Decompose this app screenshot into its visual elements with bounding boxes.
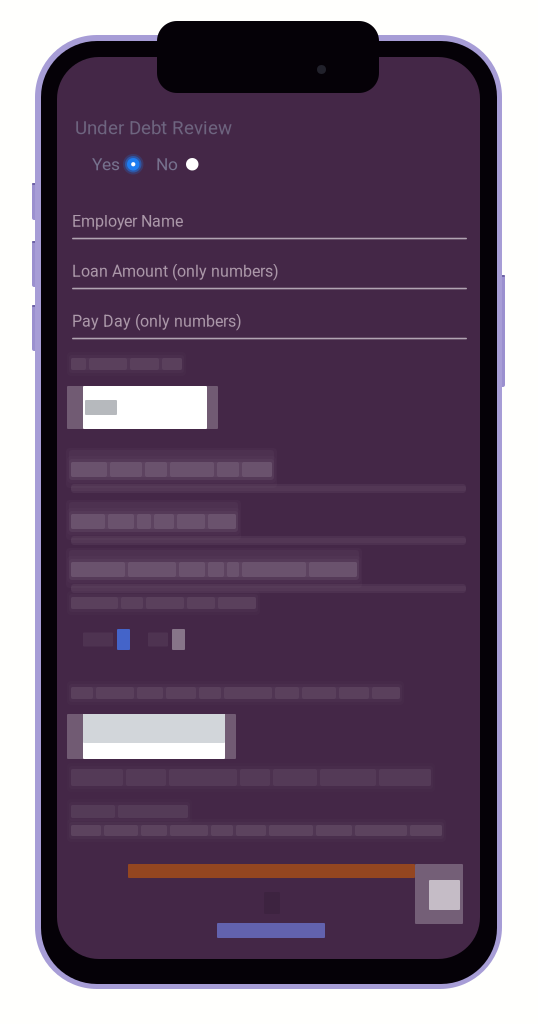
staticText: Employer Name: [72, 212, 183, 231]
staticText: Pay Day (only numbers): [72, 312, 242, 331]
staticText: Yes: [92, 154, 120, 174]
button[interactable]: Employer Name: [72, 212, 467, 239]
button[interactable]: Yes: [92, 154, 143, 174]
button[interactable]: Pay Day (only numbers): [72, 312, 467, 339]
staticText: Loan Amount (only numbers): [72, 262, 279, 281]
staticText: Under Debt Review: [75, 117, 232, 139]
button[interactable]: No: [156, 154, 202, 174]
staticText: No: [156, 154, 178, 174]
button[interactable]: Choose file: [67, 386, 218, 429]
button[interactable]: Under Debt Review: [75, 117, 232, 139]
button[interactable]: Loan Amount (only numbers): [72, 262, 467, 289]
button[interactable]: Choose file: [67, 714, 236, 759]
